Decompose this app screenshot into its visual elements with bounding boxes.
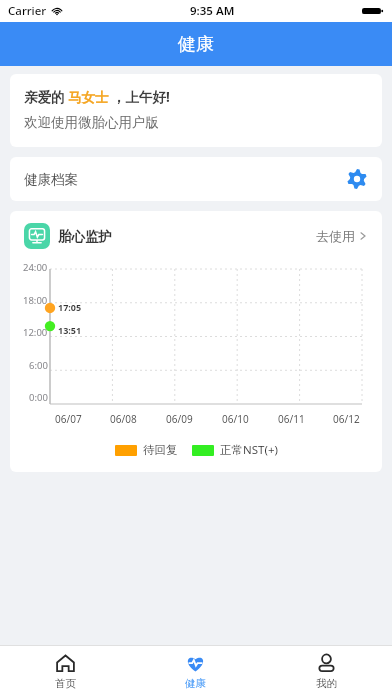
button[interactable]: 健康档案 — [10, 157, 382, 201]
button[interactable]: 胎心监护 — [10, 211, 382, 261]
staticText: 去使用 — [316, 228, 355, 244]
staticText: 06/07 — [55, 412, 82, 426]
staticText: 首页 — [55, 677, 76, 690]
staticText: 06/09 — [166, 412, 193, 426]
staticText: 胎心监护 — [58, 228, 112, 245]
button[interactable]: 首页 — [0, 646, 130, 696]
button[interactable]: 亲爱的 马女士 ，上午好! — [10, 74, 382, 147]
staticText: 0:00 — [29, 391, 48, 404]
staticText: 24:00 — [23, 261, 48, 274]
staticText: 欢迎使用微胎心用户版 — [24, 114, 159, 131]
staticText: 13:51 — [58, 324, 82, 336]
staticText: 亲爱的 马女士 ，上午好! — [24, 88, 170, 106]
staticText: 正常NST(+) — [220, 442, 278, 458]
staticText: 17:05 — [58, 301, 82, 313]
staticText: 9:35 AM — [190, 3, 235, 19]
staticText: 06/12 — [333, 412, 360, 426]
other: 设置 — [346, 168, 368, 190]
staticText: 待回复 — [143, 443, 178, 457]
staticText: 18:00 — [23, 294, 48, 307]
staticText: 6:00 — [29, 359, 48, 372]
staticText: 健康档案 — [24, 171, 78, 188]
staticText: 健康 — [178, 33, 214, 56]
staticText: Carrier — [8, 3, 47, 19]
staticText: 12:00 — [23, 326, 48, 339]
staticText: 我的 — [316, 677, 337, 690]
staticText: 健康 — [185, 677, 206, 690]
button[interactable]: 健康 — [130, 646, 261, 696]
staticText: 06/11 — [278, 412, 305, 426]
staticText: 06/08 — [110, 412, 137, 426]
button[interactable]: 我的 — [261, 646, 392, 696]
staticText: 06/10 — [222, 412, 249, 426]
